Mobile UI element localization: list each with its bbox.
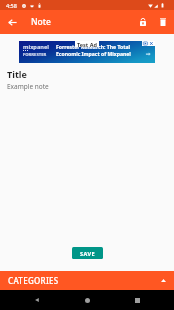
staticText: FORRESTER xyxy=(23,52,47,58)
staticText: 4:58 xyxy=(6,2,17,9)
button[interactable]: CATEGORIES xyxy=(0,271,174,290)
button[interactable]: Recent apps xyxy=(127,290,147,310)
staticText: CATEGORIES xyxy=(8,275,59,286)
button[interactable]: SAVE xyxy=(72,247,103,259)
button[interactable]: Lock note xyxy=(133,12,153,32)
staticText: Example note xyxy=(7,82,49,91)
staticText: Title xyxy=(7,68,27,80)
button[interactable]: Back xyxy=(27,290,47,310)
staticText: SAVE xyxy=(80,250,95,257)
staticText: Test Ad xyxy=(77,41,97,47)
button[interactable]: mixpanel xyxy=(19,41,155,63)
button[interactable]: Home xyxy=(77,290,97,310)
staticText: Note xyxy=(31,16,51,28)
staticText: Forrester Research: The Total Economic I… xyxy=(56,44,131,58)
button[interactable]: Back xyxy=(2,12,22,32)
button[interactable]: Delete note xyxy=(153,12,173,32)
staticText: mixpanel xyxy=(23,43,49,51)
